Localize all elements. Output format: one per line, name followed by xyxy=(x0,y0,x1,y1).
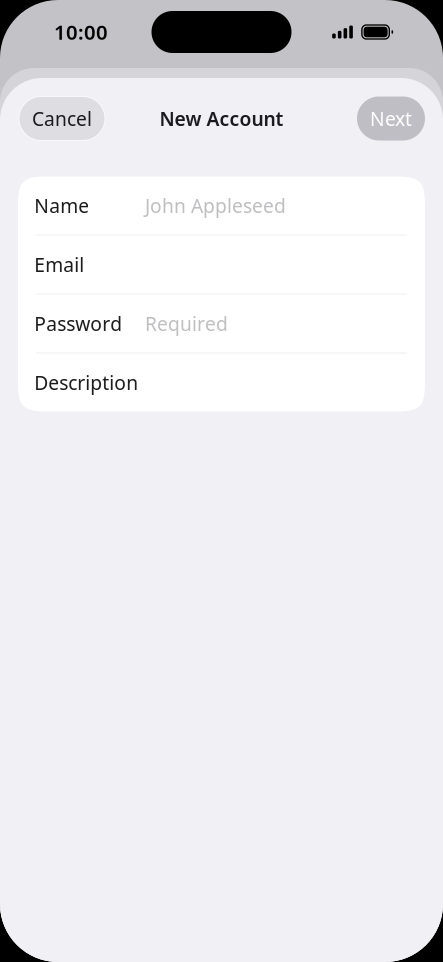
staticText: New Account xyxy=(159,105,283,132)
staticText: Required xyxy=(145,310,228,337)
button[interactable]: Cancel xyxy=(19,96,105,140)
staticText: Description xyxy=(34,369,138,396)
staticText: Name xyxy=(34,192,89,219)
staticText: Password xyxy=(34,310,122,337)
staticText: 10:00 xyxy=(54,18,108,46)
staticText: John Appleseed xyxy=(145,192,286,219)
staticText: Email xyxy=(34,251,84,278)
staticText: Next xyxy=(370,105,412,132)
button[interactable]: Next xyxy=(357,96,425,140)
staticText: Cancel xyxy=(32,105,92,132)
